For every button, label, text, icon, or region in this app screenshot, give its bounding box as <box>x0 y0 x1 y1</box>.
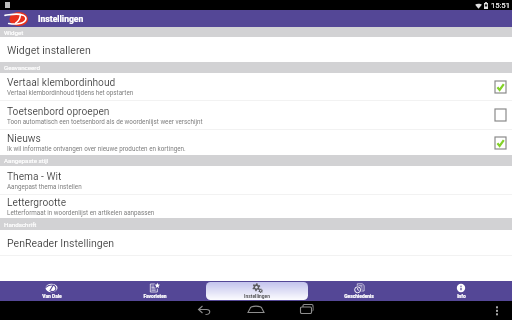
staticText: Geschiedenis <box>344 293 374 299</box>
button[interactable]: Toetsenbord oproepen <box>0 101 512 129</box>
button[interactable]: PenReader Instellingen <box>0 230 512 255</box>
staticText: Nieuws <box>7 133 41 145</box>
staticText: Aangepaste stijl <box>4 157 49 164</box>
button[interactable]: Widget installeren <box>0 37 512 62</box>
staticText: Toon automatisch een toetsenbord als de … <box>7 118 203 125</box>
staticText: Ik wil informatie ontvangen over nieuwe … <box>7 145 186 152</box>
staticText: Vertaal klembordinhoud tijdens het opsta… <box>7 89 134 96</box>
staticText: Instellingen <box>38 14 84 24</box>
button[interactable]: Nieuws <box>0 130 512 155</box>
button[interactable]: Geschiedenis <box>308 281 410 301</box>
button[interactable]: Lettergrootte <box>0 195 512 218</box>
staticText: Aangepast thema instellen <box>7 183 82 190</box>
staticText: Favorieten <box>143 293 167 299</box>
staticText: Toetsenbord oproepen <box>7 106 110 118</box>
button[interactable]: Instellingen <box>206 281 308 301</box>
staticText: Lettergrootte <box>7 197 67 209</box>
button[interactable]: Info <box>410 281 512 301</box>
staticText: Info <box>457 293 466 299</box>
staticText: 15:51 <box>491 1 510 10</box>
staticText: PenReader Instellingen <box>7 237 115 249</box>
button[interactable]: Vertaal klembordinhoud <box>0 73 512 100</box>
staticText: Vertaal klembordinhoud <box>7 77 116 89</box>
staticText: Geavanceerd <box>4 64 40 71</box>
button[interactable]: Van Dale <box>0 281 103 301</box>
staticText: Letterformaat in woordenlijst en artikel… <box>7 209 155 216</box>
staticText: Handschrift <box>4 221 37 228</box>
staticText: Widget installeren <box>7 44 91 56</box>
staticText: Widget <box>4 29 24 36</box>
button[interactable]: Favorieten <box>103 281 206 301</box>
staticText: Instellingen <box>244 293 270 299</box>
staticText: Van Dale <box>42 293 62 299</box>
button[interactable]: Thema - Wit <box>0 166 512 194</box>
staticText: Thema - Wit <box>7 171 62 183</box>
